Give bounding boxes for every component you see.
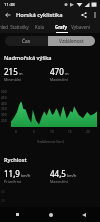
staticText: km/h bbox=[21, 173, 31, 178]
button[interactable]: Statistiky bbox=[10, 21, 29, 33]
staticText: Maximální bbox=[50, 179, 68, 184]
staticText: 15 bbox=[68, 130, 72, 134]
staticText: m bbox=[19, 71, 23, 76]
staticText: 400 bbox=[1, 102, 7, 106]
staticText: 30 bbox=[1, 199, 5, 203]
staticText: Rychlost bbox=[4, 156, 27, 164]
staticText: Maximální bbox=[50, 77, 68, 82]
staticText: Statistiky bbox=[10, 24, 29, 30]
staticText: 0 bbox=[15, 130, 17, 134]
button[interactable]: Share bbox=[78, 9, 90, 21]
staticText: 11:38 bbox=[4, 2, 15, 8]
staticText: Průměrná bbox=[4, 179, 21, 184]
staticText: 40 bbox=[1, 190, 5, 194]
button[interactable]: Recent apps bbox=[0, 207, 34, 222]
staticText: 470 bbox=[50, 66, 64, 77]
staticText: 5 bbox=[33, 130, 35, 134]
staticText: Horská cyklistika bbox=[16, 11, 63, 19]
staticText: Vzdálenost bbox=[59, 38, 84, 45]
button[interactable]: Kola bbox=[29, 21, 50, 33]
button[interactable]: Vybavení bbox=[71, 21, 90, 33]
button[interactable]: Čas bbox=[5, 36, 48, 46]
button[interactable]: Back bbox=[67, 207, 100, 222]
staticText: 44,5 bbox=[50, 168, 66, 179]
staticText: 300 bbox=[1, 113, 7, 117]
staticText: Čas bbox=[22, 38, 31, 45]
staticText: Vzdálenost (km) bbox=[37, 139, 64, 144]
staticText: Přehled bbox=[0, 24, 8, 30]
staticText: m bbox=[65, 71, 69, 76]
button[interactable]: More options bbox=[90, 10, 100, 20]
staticText: km/h bbox=[67, 173, 77, 178]
staticText: 250 bbox=[1, 119, 7, 123]
staticText: 350 bbox=[1, 107, 7, 111]
staticText: 450 bbox=[1, 96, 7, 100]
staticText: Grafy bbox=[55, 24, 67, 30]
button[interactable]: Home bbox=[34, 207, 67, 222]
button[interactable]: Přehled bbox=[0, 21, 10, 33]
staticText: Minimální bbox=[4, 77, 21, 82]
staticText: 11,9 bbox=[4, 168, 20, 179]
staticText: Kola bbox=[35, 24, 44, 30]
staticText: Nadmořská výška bbox=[4, 54, 52, 62]
staticText: Vybavení bbox=[71, 24, 90, 30]
staticText: 20 bbox=[86, 130, 90, 134]
staticText: 10 bbox=[50, 130, 54, 134]
button[interactable]: Back bbox=[2, 9, 14, 21]
button[interactable]: Vzdálenost bbox=[48, 36, 95, 46]
staticText: 215 bbox=[4, 66, 18, 77]
staticText: 500 bbox=[1, 90, 7, 94]
button[interactable]: Grafy bbox=[50, 21, 71, 33]
